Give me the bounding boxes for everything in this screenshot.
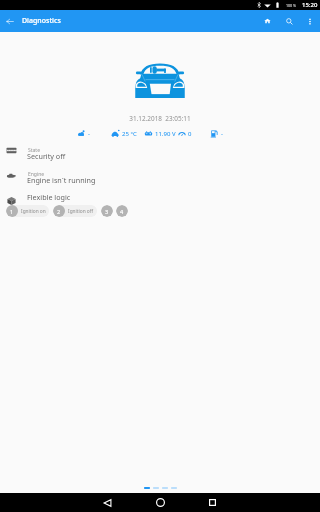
staticText: Engine isn`t running	[27, 175, 96, 185]
button[interactable]: Flexible logic	[0, 195, 320, 209]
staticText: 2	[57, 208, 61, 215]
staticText: 100 %	[286, 3, 297, 8]
staticText: Flexible logic	[27, 192, 71, 202]
staticText: 0	[188, 130, 192, 138]
button[interactable]: Home	[256, 10, 278, 32]
button[interactable]: More options	[300, 10, 320, 32]
button[interactable]: 1	[6, 205, 49, 217]
button[interactable]: 11.90 V	[144, 129, 176, 138]
staticText: 31.12.2018 23:05:11	[0, 114, 320, 123]
button[interactable]: 0	[178, 130, 192, 138]
staticText: 11.90 V	[155, 130, 176, 138]
button[interactable]: 2	[53, 205, 97, 217]
button[interactable]: 4	[116, 205, 128, 217]
staticText: Ignition off	[68, 208, 94, 215]
button[interactable]: -	[210, 129, 223, 138]
button[interactable]: State	[0, 147, 320, 171]
staticText: Diagnostics	[22, 16, 61, 26]
staticText: 25 °C	[122, 130, 137, 138]
button[interactable]: -	[77, 129, 90, 138]
button[interactable]: Back	[85, 493, 129, 512]
button[interactable]: Home	[138, 493, 182, 512]
button[interactable]: 3	[101, 205, 113, 217]
button[interactable]: Engine	[0, 171, 320, 195]
staticText: -	[88, 130, 90, 138]
button[interactable]: Recents	[190, 493, 234, 512]
staticText: 15:20	[302, 1, 318, 9]
staticText: 3	[105, 208, 109, 215]
staticText: State	[28, 147, 40, 154]
staticText: Security off	[27, 151, 66, 161]
staticText: 4	[120, 208, 124, 215]
staticText: -	[221, 130, 223, 138]
button[interactable]: Search	[278, 10, 300, 32]
button[interactable]: Back	[0, 10, 20, 32]
button[interactable]: 25 °C	[111, 129, 137, 138]
staticText: 1	[10, 208, 14, 215]
staticText: Ignition on	[21, 208, 46, 215]
staticText: Engine	[28, 171, 45, 178]
